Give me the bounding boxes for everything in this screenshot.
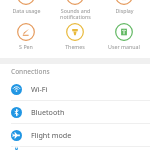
- button[interactable]: Themes: [52, 22, 98, 50]
- button[interactable]: Data usage: [3, 0, 49, 14]
- button[interactable]: Display: [101, 0, 147, 14]
- button[interactable]: Sounds and notifications: [52, 0, 98, 20]
- other: Data usage: [17, 0, 35, 5]
- button[interactable]: User manual: [101, 22, 147, 50]
- other: Sounds and notifications: [66, 0, 84, 5]
- staticText: Flight mode: [31, 130, 72, 140]
- staticText: User manual: [108, 43, 140, 50]
- staticText: Themes: [65, 43, 85, 50]
- other: Display: [115, 0, 133, 5]
- button[interactable]: Mobile hotspot and tethering: [0, 147, 150, 150]
- staticText: Bluetooth: [31, 107, 65, 117]
- staticText: S Pen: [19, 43, 33, 50]
- button[interactable]: Bluetooth: [0, 101, 150, 123]
- staticText: Connections: [11, 67, 50, 76]
- button[interactable]: Flight mode: [0, 124, 150, 146]
- staticText: Data usage: [12, 7, 41, 14]
- other: Themes: [66, 23, 84, 41]
- staticText: Wi-Fi: [31, 84, 48, 94]
- button[interactable]: Wi-Fi: [0, 78, 150, 100]
- other: S Pen: [17, 23, 35, 41]
- button[interactable]: S Pen: [3, 22, 49, 50]
- staticText: Display: [115, 7, 134, 14]
- staticText: Sounds and notifications: [60, 7, 91, 20]
- other: User manual: [115, 23, 133, 41]
